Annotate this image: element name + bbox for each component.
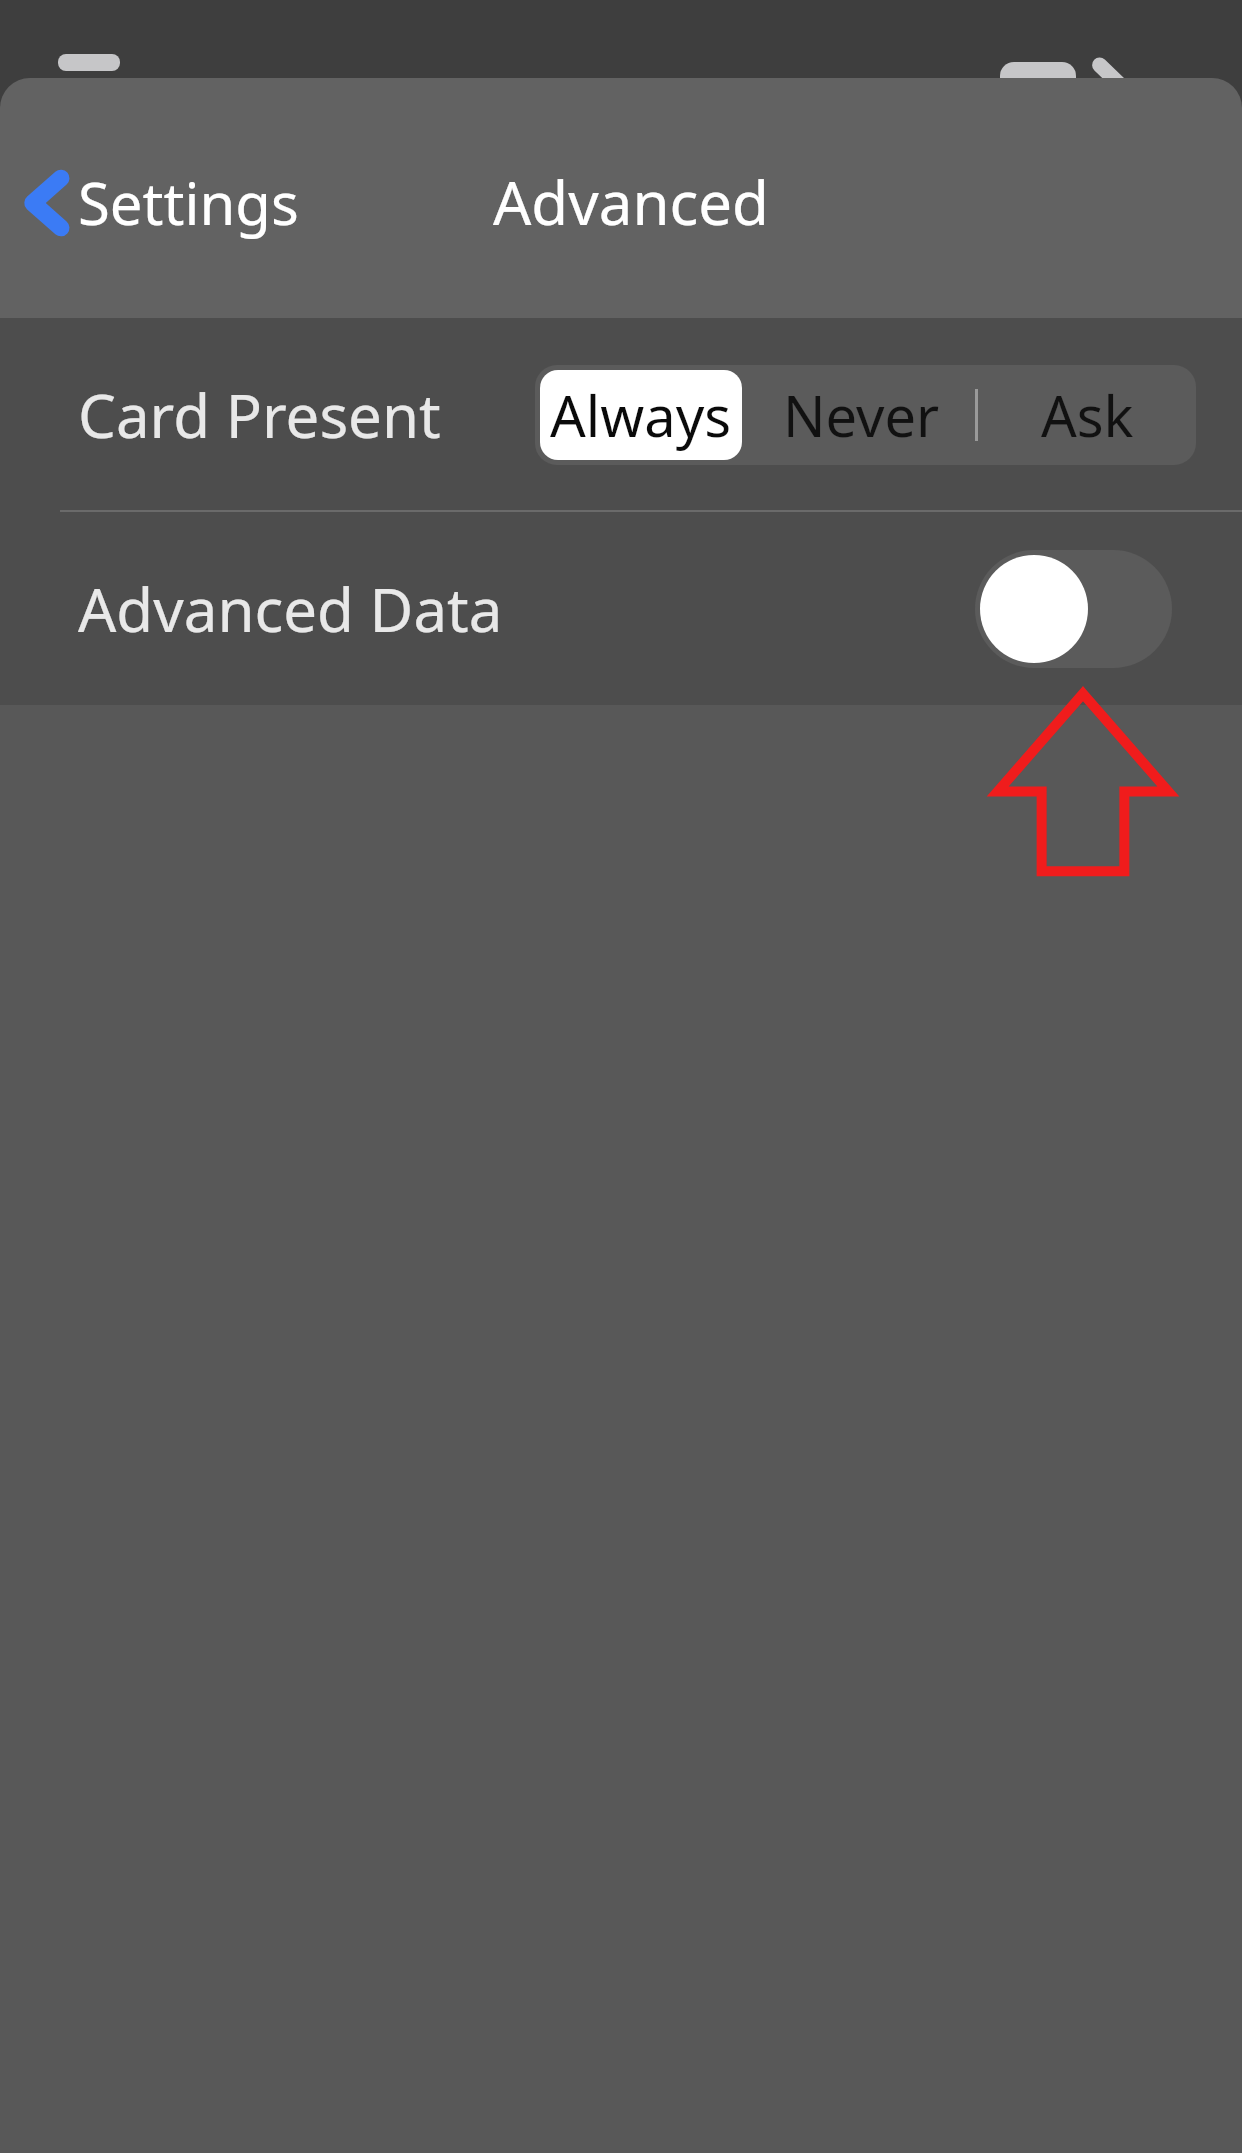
button[interactable]: Never xyxy=(747,365,975,465)
button[interactable]: Always xyxy=(540,370,742,460)
button[interactable]: Settings xyxy=(0,155,311,250)
other: Camera xyxy=(1000,62,1076,122)
button[interactable]: Card Present xyxy=(0,318,1242,512)
button[interactable]: Advanced Data toggle xyxy=(975,550,1172,668)
staticText: Advanced xyxy=(493,161,769,243)
button[interactable]: Advanced Data xyxy=(0,512,1242,705)
staticText: Ask xyxy=(1041,377,1134,453)
staticText: Card Present xyxy=(78,374,441,456)
staticText: Always xyxy=(550,377,732,453)
staticText: Never xyxy=(783,377,940,453)
staticText: Advanced Data xyxy=(78,568,503,650)
button[interactable]: Ask xyxy=(978,365,1196,465)
staticText: Settings xyxy=(78,163,299,242)
